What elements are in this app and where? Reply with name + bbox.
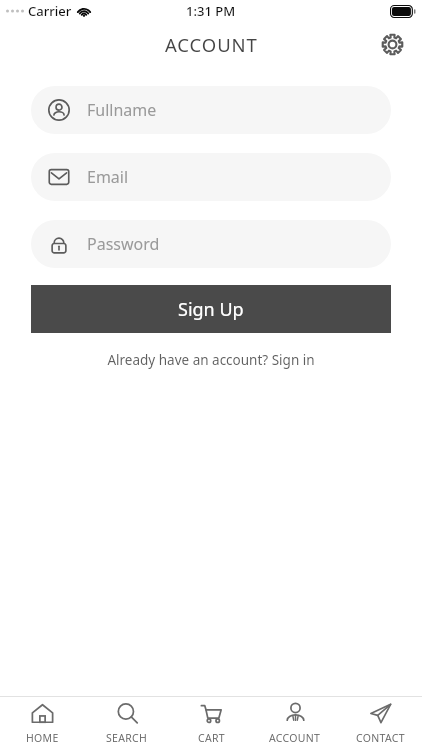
button[interactable]: ACCOUNT	[253, 697, 337, 750]
button[interactable]: Password	[31, 220, 391, 268]
staticText: Password	[87, 233, 160, 255]
staticText: Carrier	[28, 2, 72, 20]
staticText: HOME	[26, 731, 59, 745]
button[interactable]: Email	[31, 153, 391, 201]
staticText: ACCOUNT	[165, 32, 258, 57]
button[interactable]: SEARCH	[85, 697, 169, 750]
button[interactable]: Settings	[375, 27, 409, 61]
staticText: CART	[198, 731, 225, 745]
button[interactable]: Already have an account? Sign in	[0, 347, 422, 373]
staticText: Email	[87, 166, 129, 188]
staticText: ACCOUNT	[269, 731, 321, 745]
staticText: SEARCH	[106, 731, 148, 745]
staticText: Fullname	[87, 99, 157, 121]
button[interactable]: Sign Up	[31, 285, 391, 333]
staticText: 1:31 PM	[186, 2, 236, 20]
button[interactable]: CART	[169, 697, 253, 750]
button[interactable]: CONTACT	[338, 697, 422, 750]
button[interactable]: Fullname	[31, 86, 391, 134]
staticText: CONTACT	[356, 731, 405, 745]
staticText: Sign Up	[178, 297, 244, 322]
button[interactable]: HOME	[0, 697, 84, 750]
